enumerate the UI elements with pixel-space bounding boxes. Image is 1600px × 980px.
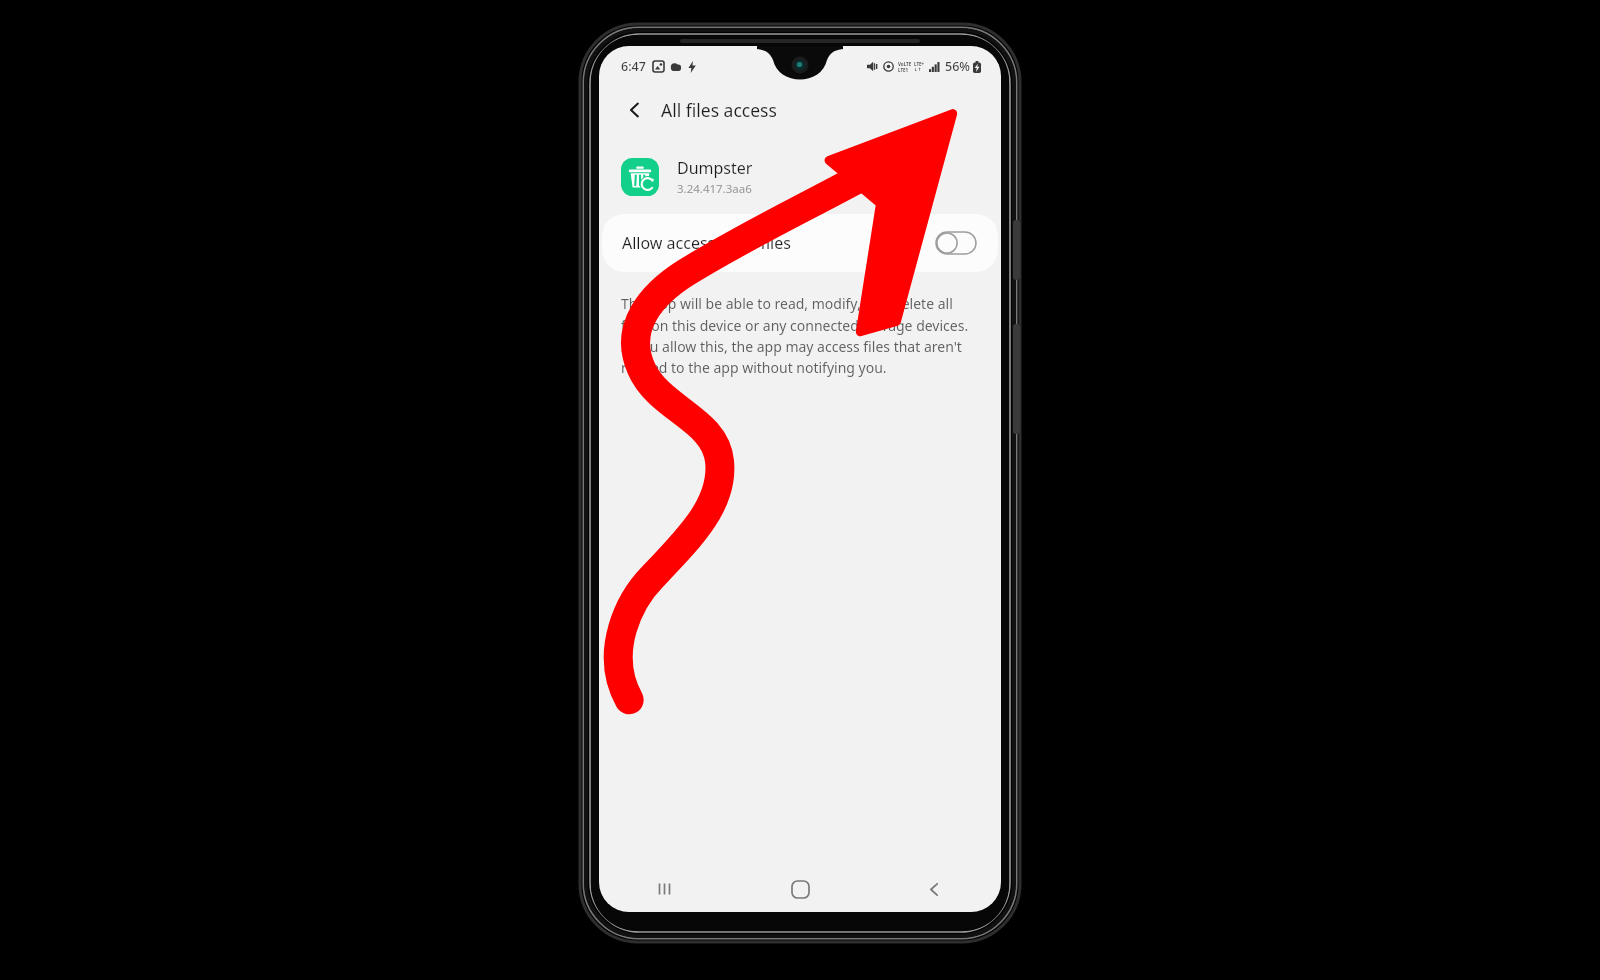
staticText: LTE+ [914,61,925,67]
staticText: 6:47 [621,58,646,75]
button[interactable]: Allow access to all files [602,214,998,272]
staticText: All files access [661,98,777,122]
staticText: ↓↑ [914,67,922,72]
staticText: This app will be able to read, modify, a… [621,294,979,377]
button[interactable]: Home [733,866,867,912]
button[interactable]: Recents [599,866,733,912]
staticText: Dumpster [677,157,753,179]
staticText: 56% [945,58,970,75]
button[interactable]: Back [617,92,653,128]
staticText: VoLTE [898,61,912,67]
staticText: Allow access to all files [622,232,791,254]
button[interactable]: Back [867,866,1001,912]
staticText: LTE1 [898,67,909,73]
staticText: 3.24.417.3aa6 [677,181,752,197]
